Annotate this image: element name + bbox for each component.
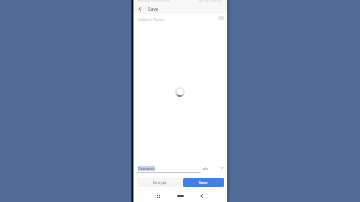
button[interactable]: Recents — [153, 191, 163, 201]
button[interactable]: New folder — [216, 14, 225, 23]
staticText: Save — [148, 6, 159, 12]
button[interactable]: Encrypt — [137, 178, 182, 187]
button[interactable]: Home — [175, 191, 185, 201]
staticText: Encrypt — [153, 180, 167, 185]
staticText: Folders > Phone > — [138, 17, 166, 21]
button[interactable]: Back — [197, 191, 207, 201]
button[interactable]: Back — [136, 5, 144, 13]
staticText: Save — [199, 180, 208, 185]
button[interactable]: Save — [183, 178, 224, 187]
staticText: .xls — [202, 166, 209, 171]
staticText: Contacts — [138, 166, 155, 171]
